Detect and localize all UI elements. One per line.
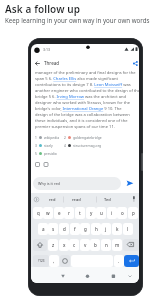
button[interactable]: q: [33, 207, 43, 219]
button[interactable]: u: [96, 207, 106, 219]
button[interactable]: f: [70, 223, 80, 235]
button[interactable]: red: [49, 197, 56, 202]
button[interactable]: [33, 239, 47, 251]
staticText: u: [100, 210, 103, 216]
staticText: t: [79, 210, 81, 216]
staticText: j: [105, 226, 107, 232]
button[interactable]: s: [48, 223, 58, 235]
staticText: structuremag.org: [73, 143, 102, 148]
staticText: 4: [64, 144, 66, 148]
staticText: goldengatebridge: [73, 135, 102, 140]
staticText: x: [63, 242, 66, 248]
staticText: o: [121, 210, 124, 216]
button[interactable]: Why is it red: [33, 177, 121, 190]
button[interactable]: [123, 239, 139, 251]
staticText: Thread: [44, 60, 60, 66]
staticText: Keep learning in your own way in your ow…: [5, 16, 150, 24]
staticText: z: [52, 242, 55, 248]
staticText: ?123: [38, 259, 45, 263]
staticText: a: [42, 226, 45, 232]
staticText: f: [74, 226, 76, 232]
staticText: Why is it red: [38, 181, 60, 186]
staticText: m: [115, 242, 120, 248]
staticText: c: [73, 242, 76, 248]
staticText: starly: [44, 143, 53, 148]
button[interactable]: [124, 255, 139, 267]
staticText: 5: [35, 152, 37, 156]
button[interactable]: 4: [64, 143, 102, 148]
staticText: 1: [35, 136, 37, 140]
button[interactable]: v: [80, 239, 90, 251]
button[interactable]: d: [59, 223, 69, 235]
button[interactable]: k: [112, 223, 122, 235]
button[interactable]: a: [38, 223, 48, 235]
button[interactable]: ?123: [33, 255, 49, 267]
button[interactable]: r: [64, 207, 74, 219]
button[interactable]: [133, 61, 138, 66]
button[interactable]: l: [123, 223, 133, 235]
button[interactable]: [126, 180, 134, 187]
button[interactable]: [83, 271, 93, 281]
button[interactable]: p: [128, 207, 138, 219]
button[interactable]: b: [90, 239, 100, 251]
staticText: g: [84, 226, 87, 232]
button[interactable]: [60, 255, 70, 267]
button[interactable]: g: [80, 223, 90, 235]
staticText: .: [118, 258, 120, 264]
staticText: y: [90, 210, 93, 216]
staticText: 2: [64, 136, 66, 140]
staticText: 3:13: [43, 47, 50, 52]
staticText: ,: [53, 258, 55, 264]
staticText: presidio: [44, 151, 57, 156]
button[interactable]: e: [54, 207, 64, 219]
staticText: n: [105, 242, 108, 248]
button[interactable]: h: [91, 223, 101, 235]
staticText: 3: [35, 144, 37, 148]
staticText: r: [68, 210, 70, 216]
staticText: d: [63, 226, 66, 232]
staticText: Ask a follow up: [5, 2, 81, 16]
staticText: manager of the preliminary and final des…: [35, 70, 139, 130]
button[interactable]: x: [59, 239, 69, 251]
staticText: e: [58, 210, 61, 216]
staticText: v: [84, 242, 87, 248]
staticText: wikipedia: [44, 135, 60, 140]
button[interactable]: Ted: [104, 197, 111, 202]
staticText: k: [116, 226, 119, 232]
button[interactable]: .: [114, 255, 124, 267]
button[interactable]: 5: [35, 151, 57, 156]
button[interactable]: i: [107, 207, 117, 219]
staticText: h: [95, 226, 98, 232]
button[interactable]: m: [112, 239, 122, 251]
button[interactable]: n: [101, 239, 111, 251]
button[interactable]: ,: [49, 255, 59, 267]
staticText: s: [52, 226, 55, 232]
staticText: b: [94, 242, 97, 248]
button[interactable]: j: [101, 223, 111, 235]
button[interactable]: 3: [35, 143, 53, 148]
button[interactable]: c: [69, 239, 79, 251]
button[interactable]: [35, 61, 40, 66]
button[interactable]: [35, 162, 49, 167]
button[interactable]: t: [75, 207, 85, 219]
staticText: p: [132, 210, 135, 216]
staticText: q: [37, 210, 40, 216]
button[interactable]: [58, 271, 68, 281]
button[interactable]: o: [117, 207, 127, 219]
staticText: i: [111, 210, 113, 216]
button[interactable]: w: [43, 207, 53, 219]
staticText: l: [127, 226, 129, 232]
button[interactable]: 2: [64, 135, 102, 140]
button[interactable]: [109, 271, 119, 281]
button[interactable]: z: [48, 239, 58, 251]
button[interactable]: read: [72, 197, 81, 202]
button[interactable]: y: [86, 207, 96, 219]
button[interactable]: 1: [35, 135, 60, 140]
staticText: w: [46, 210, 50, 216]
